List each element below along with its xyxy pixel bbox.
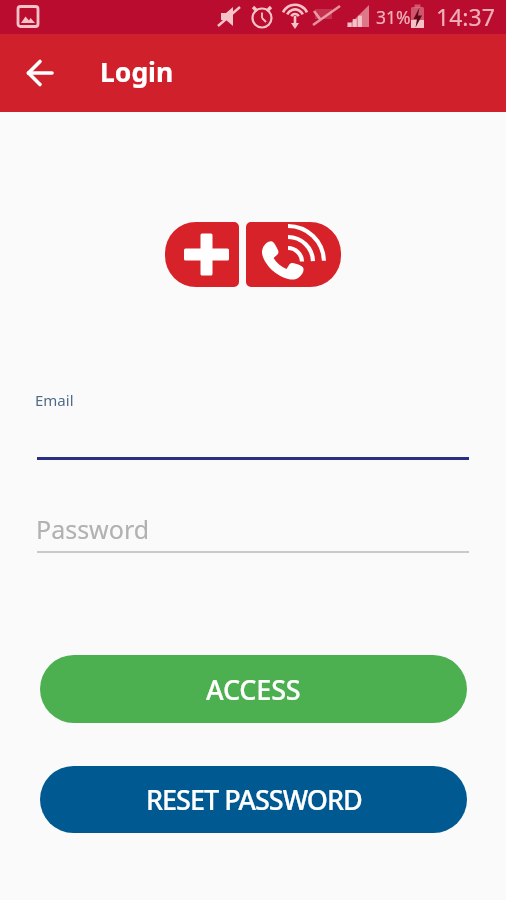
staticText: 14:37 xyxy=(436,1,495,32)
staticText: Password xyxy=(36,512,150,546)
staticText: ACCESS xyxy=(206,671,301,708)
button[interactable]: ACCESS xyxy=(40,655,467,723)
button[interactable]: RESET PASSWORD xyxy=(40,766,467,833)
button[interactable]: Back xyxy=(16,49,64,97)
staticText: Login xyxy=(100,54,174,90)
staticText: Email xyxy=(35,390,74,410)
staticText: RESET PASSWORD xyxy=(146,781,362,818)
staticText: 31% xyxy=(376,5,411,29)
